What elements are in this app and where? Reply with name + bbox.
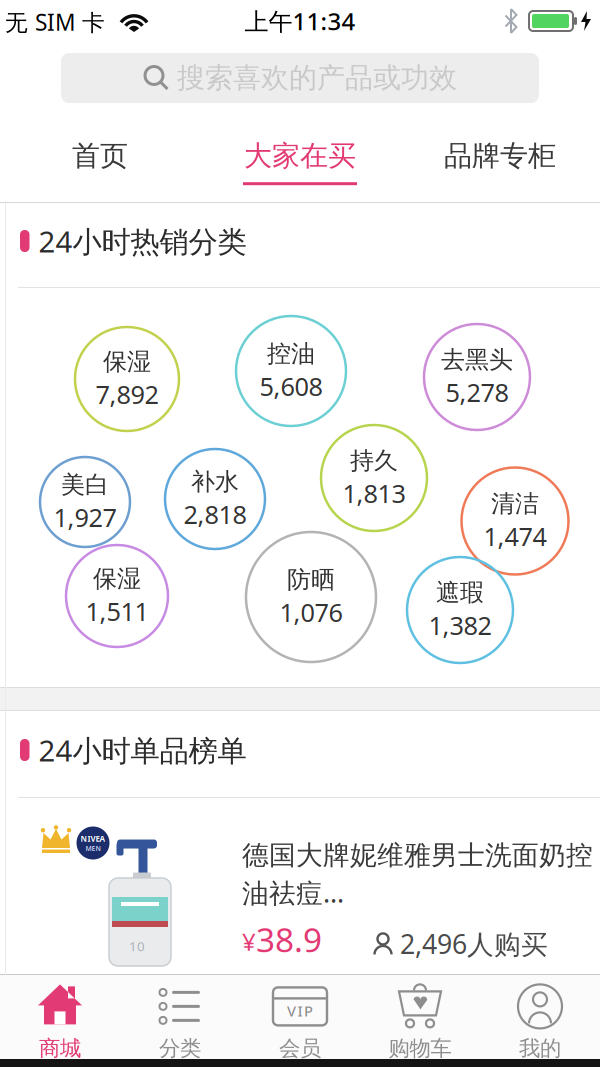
staticText: 38.9 xyxy=(256,917,322,961)
button[interactable]: 品牌专柜 xyxy=(400,116,600,202)
staticText: 遮瑕 xyxy=(436,578,484,607)
staticText: 分类 xyxy=(159,1035,201,1062)
staticText: 大家在买 xyxy=(244,139,356,173)
staticText: 上午11:34 xyxy=(244,5,355,37)
staticText: 7,892 xyxy=(95,377,158,411)
staticText: 24小时单品榜单 xyxy=(38,730,246,769)
button[interactable]: NIVEA xyxy=(0,798,600,974)
staticText: 控油 xyxy=(267,339,315,368)
staticText: 去黑头 xyxy=(441,345,513,374)
button[interactable]: 保湿 xyxy=(75,327,179,431)
staticText: 1,927 xyxy=(53,500,116,534)
staticText: 1,511 xyxy=(85,594,148,628)
button[interactable]: 搜索喜欢的产品或功效 xyxy=(0,44,600,116)
staticText: 搜索喜欢的产品或功效 xyxy=(177,61,457,95)
staticText: 5,608 xyxy=(259,369,322,403)
staticText: 我的 xyxy=(519,1035,561,1062)
staticText: 无 SIM 卡 xyxy=(5,7,105,37)
button[interactable]: 清洁 xyxy=(461,467,568,574)
staticText: 1,382 xyxy=(428,608,491,642)
button[interactable]: 遮瑕 xyxy=(407,557,513,663)
staticText: MEN xyxy=(85,844,100,853)
button[interactable]: 控油 xyxy=(236,316,346,426)
staticText: 清洁 xyxy=(491,489,539,518)
staticText: 美白 xyxy=(61,470,109,499)
staticText: 2,818 xyxy=(183,497,246,531)
staticText: 商城 xyxy=(39,1035,81,1062)
staticText: 品牌专柜 xyxy=(444,139,556,173)
staticText: 5,278 xyxy=(445,375,508,409)
staticText: 保湿 xyxy=(93,564,141,593)
staticText: VIP xyxy=(287,1001,313,1021)
button[interactable]: 首页 xyxy=(0,116,200,202)
staticText: 2,496人购买 xyxy=(400,926,548,961)
staticText: 1,474 xyxy=(483,519,546,553)
button[interactable]: 美白 xyxy=(40,457,130,547)
staticText: 首页 xyxy=(72,139,128,173)
button[interactable]: 持久 xyxy=(321,425,427,531)
button[interactable]: 大家在买 xyxy=(200,116,400,202)
staticText: 10 xyxy=(129,937,145,955)
button[interactable]: 分类 xyxy=(120,975,240,1059)
button[interactable]: 防晒 xyxy=(246,532,376,662)
button[interactable]: 补水 xyxy=(165,449,265,549)
staticText: 补水 xyxy=(191,467,239,496)
button[interactable]: 保湿 xyxy=(66,545,168,647)
staticText: 会员 xyxy=(279,1035,321,1062)
staticText: 购物车 xyxy=(388,1035,451,1062)
button[interactable]: 商城 xyxy=(0,975,120,1059)
staticText: ¥ xyxy=(242,926,256,957)
staticText: 油祛痘... xyxy=(242,875,344,910)
staticText: NIVEA xyxy=(80,833,105,844)
button[interactable]: 购物车 xyxy=(360,975,480,1059)
staticText: 1,813 xyxy=(342,476,405,510)
button[interactable]: 去黑头 xyxy=(424,324,530,430)
staticText: 德国大牌妮维雅男士洗面奶控 xyxy=(242,839,593,872)
staticText: 保湿 xyxy=(103,347,151,376)
staticText: 1,076 xyxy=(279,595,342,629)
staticText: 24小时热销分类 xyxy=(38,221,246,260)
button[interactable]: 我的 xyxy=(480,975,600,1059)
staticText: 防晒 xyxy=(287,565,335,594)
button[interactable]: VIP xyxy=(240,975,360,1059)
staticText: 持久 xyxy=(350,446,398,475)
